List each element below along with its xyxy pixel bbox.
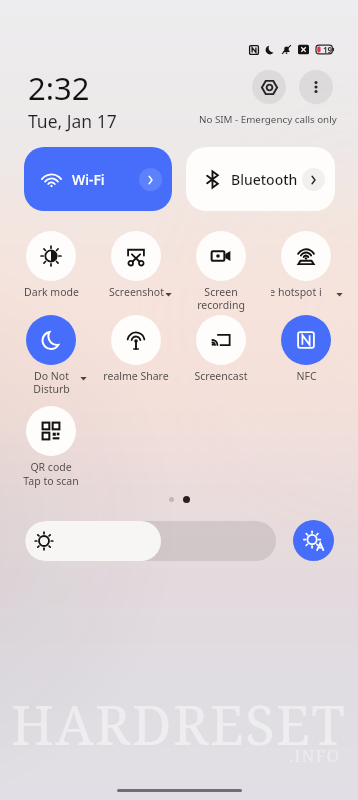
button[interactable] xyxy=(196,315,246,395)
staticText: Tap to scan xyxy=(23,474,79,488)
staticText: e hotspot i xyxy=(271,285,322,299)
staticText: Wi-Fi xyxy=(72,170,105,189)
button[interactable]: More options xyxy=(299,70,333,104)
button[interactable] xyxy=(26,231,76,311)
button[interactable] xyxy=(111,315,161,395)
button[interactable] xyxy=(281,231,331,311)
button[interactable]: Bluetooth xyxy=(186,147,335,211)
button[interactable] xyxy=(196,231,246,311)
button[interactable] xyxy=(111,231,161,311)
staticText: Tue, Jan 17 xyxy=(28,109,117,133)
button[interactable] xyxy=(26,315,76,395)
staticText: 19 xyxy=(323,44,333,55)
button[interactable] xyxy=(281,315,331,395)
button[interactable]: Brightness xyxy=(25,521,276,561)
button[interactable]: Auto brightness xyxy=(293,520,334,561)
staticText: Do Not Disturb xyxy=(33,369,70,396)
staticText: 2:32 xyxy=(28,67,90,109)
staticText: Screenshot xyxy=(109,285,164,299)
staticText: HARDRESET xyxy=(11,687,347,761)
staticText: Screen recording xyxy=(197,285,245,312)
button[interactable] xyxy=(26,406,76,486)
button[interactable]: Settings xyxy=(252,70,286,104)
staticText: Screencast xyxy=(194,369,248,383)
staticText: realme Share xyxy=(103,369,169,383)
button[interactable]: Wi-Fi xyxy=(24,147,172,211)
staticText: NFC xyxy=(296,369,317,383)
staticText: QR code xyxy=(30,460,72,474)
staticText: Bluetooth xyxy=(231,170,298,189)
staticText: .INFO xyxy=(289,744,341,767)
staticText: Dark mode xyxy=(24,285,79,299)
staticText: No SIM - Emergency calls only xyxy=(199,113,337,126)
